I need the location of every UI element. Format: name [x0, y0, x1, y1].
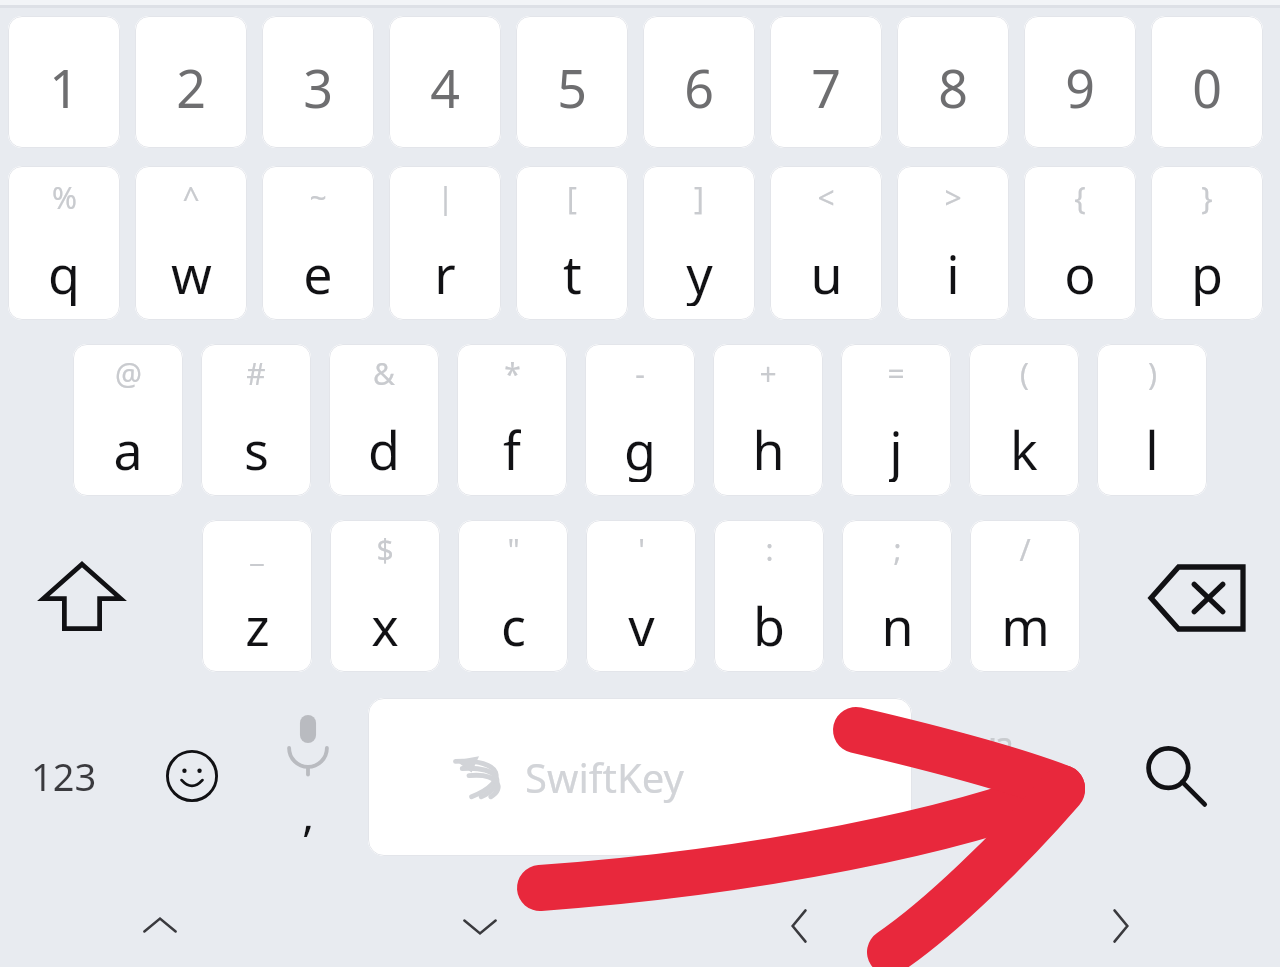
button[interactable]: 8: [897, 16, 1009, 148]
staticText: [: [567, 177, 577, 218]
staticText: /: [1019, 529, 1031, 570]
button[interactable]: ;: [842, 520, 952, 672]
button[interactable]: Move right: [1068, 890, 1172, 962]
button[interactable]: *: [457, 344, 567, 496]
staticText: n: [881, 590, 914, 658]
button[interactable]: |: [389, 166, 501, 320]
staticText: *: [504, 353, 521, 394]
staticText: 9: [1065, 52, 1095, 120]
staticText: p: [1191, 238, 1223, 306]
staticText: .!?: [979, 727, 1013, 773]
staticText: 7: [811, 52, 841, 120]
staticText: 0: [1192, 52, 1222, 120]
button[interactable]: /: [970, 520, 1080, 672]
staticText: SwiftKey: [525, 750, 684, 804]
button[interactable]: -: [585, 344, 695, 496]
staticText: ,: [302, 782, 315, 842]
staticText: 2: [176, 52, 206, 120]
button[interactable]: (: [969, 344, 1079, 496]
button[interactable]: }: [1151, 166, 1263, 320]
staticText: d: [368, 414, 400, 482]
staticText: r: [434, 238, 456, 306]
staticText: |: [437, 177, 454, 218]
button[interactable]: 7: [770, 16, 882, 148]
button[interactable]: ': [586, 520, 696, 672]
staticText: }: [1201, 177, 1213, 218]
button[interactable]: Move down: [428, 890, 532, 962]
button[interactable]: .!?: [946, 700, 1046, 800]
button[interactable]: ): [1097, 344, 1207, 496]
staticText: t: [563, 238, 582, 306]
staticText: z: [245, 590, 270, 658]
staticText: c: [501, 590, 526, 658]
button[interactable]: %: [8, 166, 120, 320]
staticText: s: [244, 414, 269, 482]
staticText: =: [887, 353, 905, 394]
staticText: 5: [557, 52, 587, 120]
button[interactable]: 1: [8, 16, 120, 148]
button[interactable]: 123: [12, 726, 116, 826]
button[interactable]: :: [714, 520, 824, 672]
staticText: +: [759, 353, 777, 394]
staticText: e: [303, 238, 333, 306]
button[interactable]: ~: [262, 166, 374, 320]
staticText: :: [765, 529, 774, 570]
staticText: #: [246, 353, 266, 394]
staticText: g: [624, 414, 656, 482]
button[interactable]: <: [770, 166, 882, 320]
button[interactable]: 5: [516, 16, 628, 148]
staticText: 6: [684, 52, 714, 120]
staticText: ': [638, 529, 645, 570]
staticText: &: [373, 353, 395, 394]
button[interactable]: ": [458, 520, 568, 672]
staticText: -: [635, 353, 645, 394]
button[interactable]: {: [1024, 166, 1136, 320]
staticText: >: [944, 177, 962, 218]
button[interactable]: ^: [135, 166, 247, 320]
staticText: ]: [694, 177, 704, 218]
staticText: v: [628, 590, 655, 658]
button[interactable]: [: [516, 166, 628, 320]
button[interactable]: ]: [643, 166, 755, 320]
button[interactable]: Voice input and comma: [262, 700, 354, 858]
staticText: m: [1001, 590, 1050, 658]
button[interactable]: $: [330, 520, 440, 672]
button[interactable]: 3: [262, 16, 374, 148]
button[interactable]: +: [713, 344, 823, 496]
button[interactable]: Search: [1120, 722, 1230, 830]
staticText: 4: [430, 52, 460, 120]
staticText: %: [52, 177, 77, 218]
button[interactable]: &: [329, 344, 439, 496]
staticText: ^: [182, 177, 200, 218]
button[interactable]: 9: [1024, 16, 1136, 148]
button[interactable]: Shift: [22, 536, 142, 656]
button[interactable]: Emoji: [142, 726, 242, 826]
button[interactable]: Move left: [748, 890, 852, 962]
staticText: ~: [309, 177, 327, 218]
staticText: @: [115, 353, 142, 394]
staticText: k: [1010, 414, 1038, 482]
staticText: 8: [938, 52, 968, 120]
staticText: (: [1020, 353, 1029, 394]
staticText: o: [1064, 238, 1096, 306]
staticText: 3: [303, 52, 333, 120]
staticText: i: [946, 238, 960, 306]
button[interactable]: 0: [1151, 16, 1263, 148]
button[interactable]: Move up: [108, 890, 212, 962]
button[interactable]: #: [201, 344, 311, 496]
button[interactable]: Space: [368, 698, 912, 856]
staticText: _: [250, 529, 264, 570]
button[interactable]: Backspace: [1138, 540, 1256, 656]
staticText: 123: [31, 750, 97, 802]
button[interactable]: >: [897, 166, 1009, 320]
staticText: ": [507, 529, 520, 570]
button[interactable]: =: [841, 344, 951, 496]
button[interactable]: 2: [135, 16, 247, 148]
staticText: j: [889, 414, 903, 482]
button[interactable]: 6: [643, 16, 755, 148]
staticText: w: [171, 238, 212, 306]
button[interactable]: _: [202, 520, 312, 672]
staticText: q: [48, 238, 80, 306]
button[interactable]: @: [73, 344, 183, 496]
button[interactable]: 4: [389, 16, 501, 148]
